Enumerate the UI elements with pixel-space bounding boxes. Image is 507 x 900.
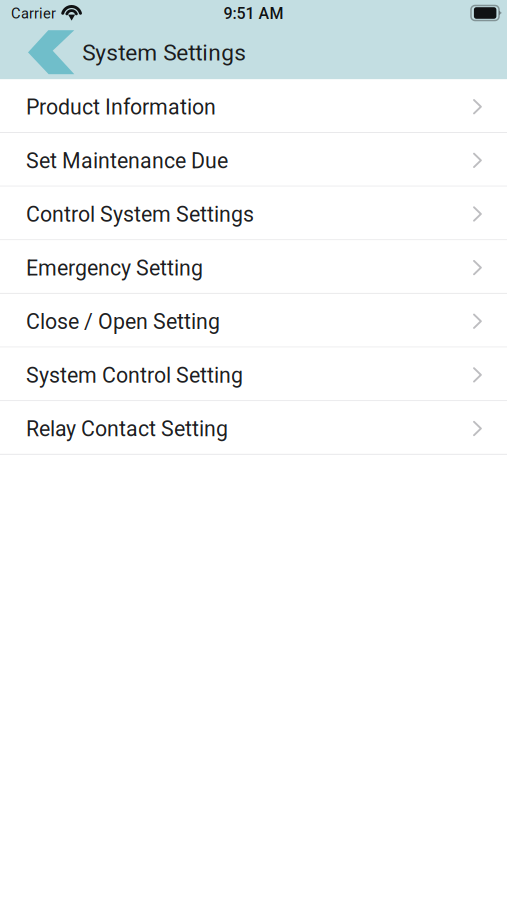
button[interactable]: Close / Open Setting — [0, 294, 507, 347]
button[interactable]: Control System Settings — [0, 187, 507, 240]
button[interactable]: Back — [0, 27, 82, 79]
button[interactable]: Relay Contact Setting — [0, 401, 507, 455]
staticText: Product Information — [26, 95, 216, 120]
staticText: System Control Setting — [26, 363, 243, 388]
button[interactable]: Product Information — [0, 79, 507, 133]
staticText: 9:51 AM — [223, 4, 283, 23]
staticText: Set Maintenance Due — [26, 148, 228, 173]
staticText: Carrier — [11, 5, 56, 22]
staticText: Relay Contact Setting — [26, 416, 228, 441]
button[interactable]: Set Maintenance Due — [0, 133, 507, 187]
button[interactable]: Emergency Setting — [0, 240, 507, 294]
staticText: Close / Open Setting — [26, 309, 220, 334]
staticText: System Settings — [82, 39, 246, 66]
staticText: Control System Settings — [26, 202, 254, 227]
button[interactable]: System Control Setting — [0, 348, 507, 401]
staticText: Emergency Setting — [26, 256, 203, 281]
